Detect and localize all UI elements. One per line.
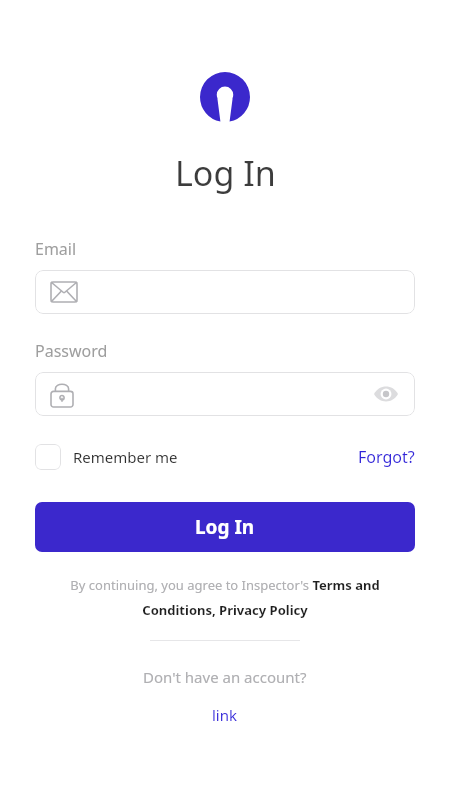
button[interactable]: Forgot? xyxy=(358,446,415,468)
staticText: Don't have an account? xyxy=(143,667,307,687)
button[interactable] xyxy=(35,270,415,314)
staticText: By continuing, you agree to Inspector's … xyxy=(37,576,413,618)
staticText: Password xyxy=(35,340,108,362)
staticText: Remember me xyxy=(73,447,178,467)
staticText: link xyxy=(212,705,238,725)
staticText: Log In xyxy=(195,514,255,540)
button[interactable]: Show password xyxy=(371,379,401,409)
button[interactable]: link xyxy=(212,705,238,725)
button[interactable]: Remember me xyxy=(35,444,178,470)
staticText: Forgot? xyxy=(358,446,415,468)
button[interactable]: Show password xyxy=(35,372,415,416)
button[interactable]: Log In xyxy=(35,502,415,552)
staticText: Log In xyxy=(175,150,276,196)
staticText: Email xyxy=(35,238,77,260)
